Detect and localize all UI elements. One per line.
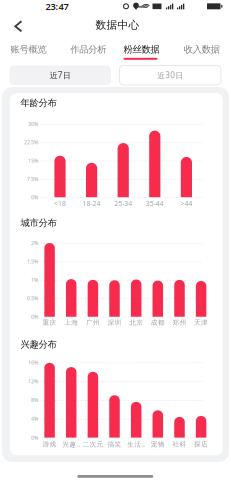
staticText: 4% xyxy=(31,415,38,422)
staticText: 16% xyxy=(28,359,38,366)
staticText: 天津 xyxy=(194,318,208,327)
staticText: 城市分布 xyxy=(20,217,56,229)
staticText: 生活.. xyxy=(127,440,145,449)
staticText: 2% xyxy=(31,239,38,247)
staticText: 深圳 xyxy=(107,318,121,327)
button[interactable]: 近30日 xyxy=(119,65,221,85)
staticText: <18 xyxy=(54,199,66,208)
staticText: 22.5% xyxy=(24,139,38,146)
staticText: 上海 xyxy=(64,318,78,327)
staticText: 社科 xyxy=(172,440,186,448)
button[interactable]: 账号概览 xyxy=(1,39,57,59)
button[interactable]: 近7日 xyxy=(9,65,111,85)
staticText: 兴趣.. xyxy=(62,440,80,449)
staticText: 搞笑 xyxy=(107,440,121,448)
staticText: 二次元 xyxy=(82,440,103,448)
button[interactable]: 作品分析 xyxy=(60,39,116,59)
staticText: 0% xyxy=(31,313,38,320)
staticText: 账号概览 xyxy=(11,44,47,55)
staticText: 25-34 xyxy=(114,199,132,208)
staticText: 郑州 xyxy=(172,318,186,327)
staticText: 近30日 xyxy=(157,70,183,80)
staticText: 1% xyxy=(31,276,38,283)
button[interactable]: 粉丝数据 xyxy=(113,39,169,59)
staticText: 年龄分布 xyxy=(20,97,56,109)
staticText: 重庆 xyxy=(43,318,57,327)
staticText: 粉丝数据 xyxy=(123,44,159,55)
staticText: 12% xyxy=(28,378,38,385)
button[interactable]: 返回 xyxy=(8,16,28,36)
staticText: 15% xyxy=(28,157,38,164)
staticText: >44 xyxy=(180,199,192,208)
staticText: 23:47 xyxy=(45,0,68,13)
staticText: 作品分析 xyxy=(70,44,106,55)
staticText: 探店 xyxy=(194,440,208,448)
staticText: 1.5% xyxy=(27,258,38,265)
staticText: 兴趣分布 xyxy=(20,339,56,350)
staticText: 宠物 xyxy=(151,440,165,448)
staticText: 0% xyxy=(31,194,38,201)
staticText: 数据中心 xyxy=(95,18,139,31)
staticText: 0% xyxy=(31,434,38,441)
staticText: 35-44 xyxy=(146,199,164,208)
staticText: 30% xyxy=(28,120,38,128)
staticText: 广州 xyxy=(86,318,100,327)
staticText: 收入数据 xyxy=(184,44,220,55)
staticText: 近7日 xyxy=(50,70,71,80)
staticText: 18-24 xyxy=(83,199,101,208)
staticText: 7.5% xyxy=(27,175,38,182)
staticText: 0.5% xyxy=(27,295,38,302)
button[interactable]: 收入数据 xyxy=(174,39,230,59)
staticText: 北京 xyxy=(129,318,143,327)
staticText: 游戏 xyxy=(43,440,57,448)
staticText: 成都 xyxy=(151,318,165,327)
staticText: 8% xyxy=(31,396,38,404)
